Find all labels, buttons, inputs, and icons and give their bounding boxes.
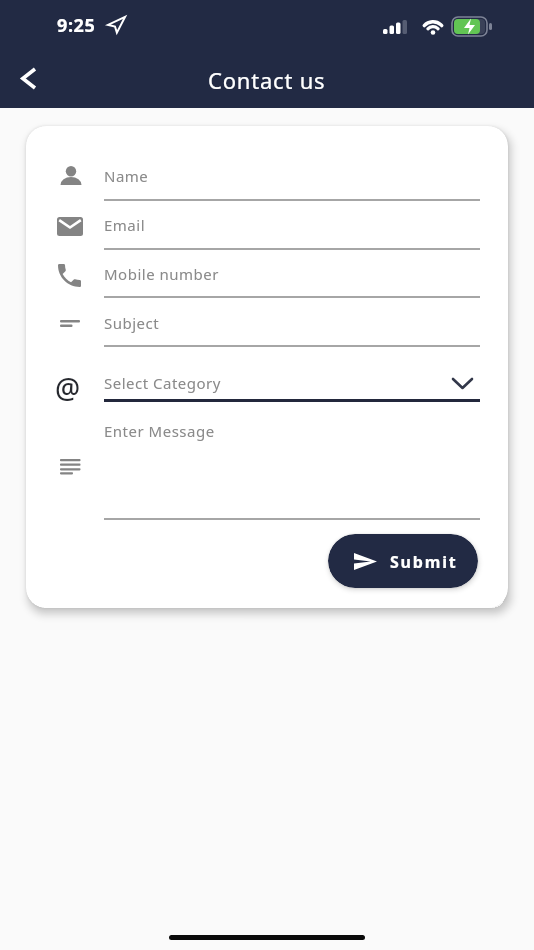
button[interactable] <box>104 300 480 347</box>
staticText: @ <box>55 369 81 407</box>
button[interactable] <box>104 361 480 402</box>
button[interactable] <box>104 411 480 520</box>
button[interactable] <box>104 154 480 201</box>
staticText: Name <box>104 166 149 186</box>
staticText: Select Category <box>104 373 221 393</box>
staticText: 9:25 <box>57 13 96 38</box>
staticText: Email <box>104 215 146 235</box>
staticText: Contact us <box>208 65 326 95</box>
button[interactable] <box>104 203 480 250</box>
staticText: Submit <box>390 551 458 573</box>
staticText: Enter Message <box>104 421 215 441</box>
button[interactable] <box>104 252 480 298</box>
staticText: Subject <box>104 313 160 333</box>
staticText: Mobile number <box>104 264 219 284</box>
button[interactable] <box>8 58 48 98</box>
button[interactable]: Submit <box>328 534 478 588</box>
